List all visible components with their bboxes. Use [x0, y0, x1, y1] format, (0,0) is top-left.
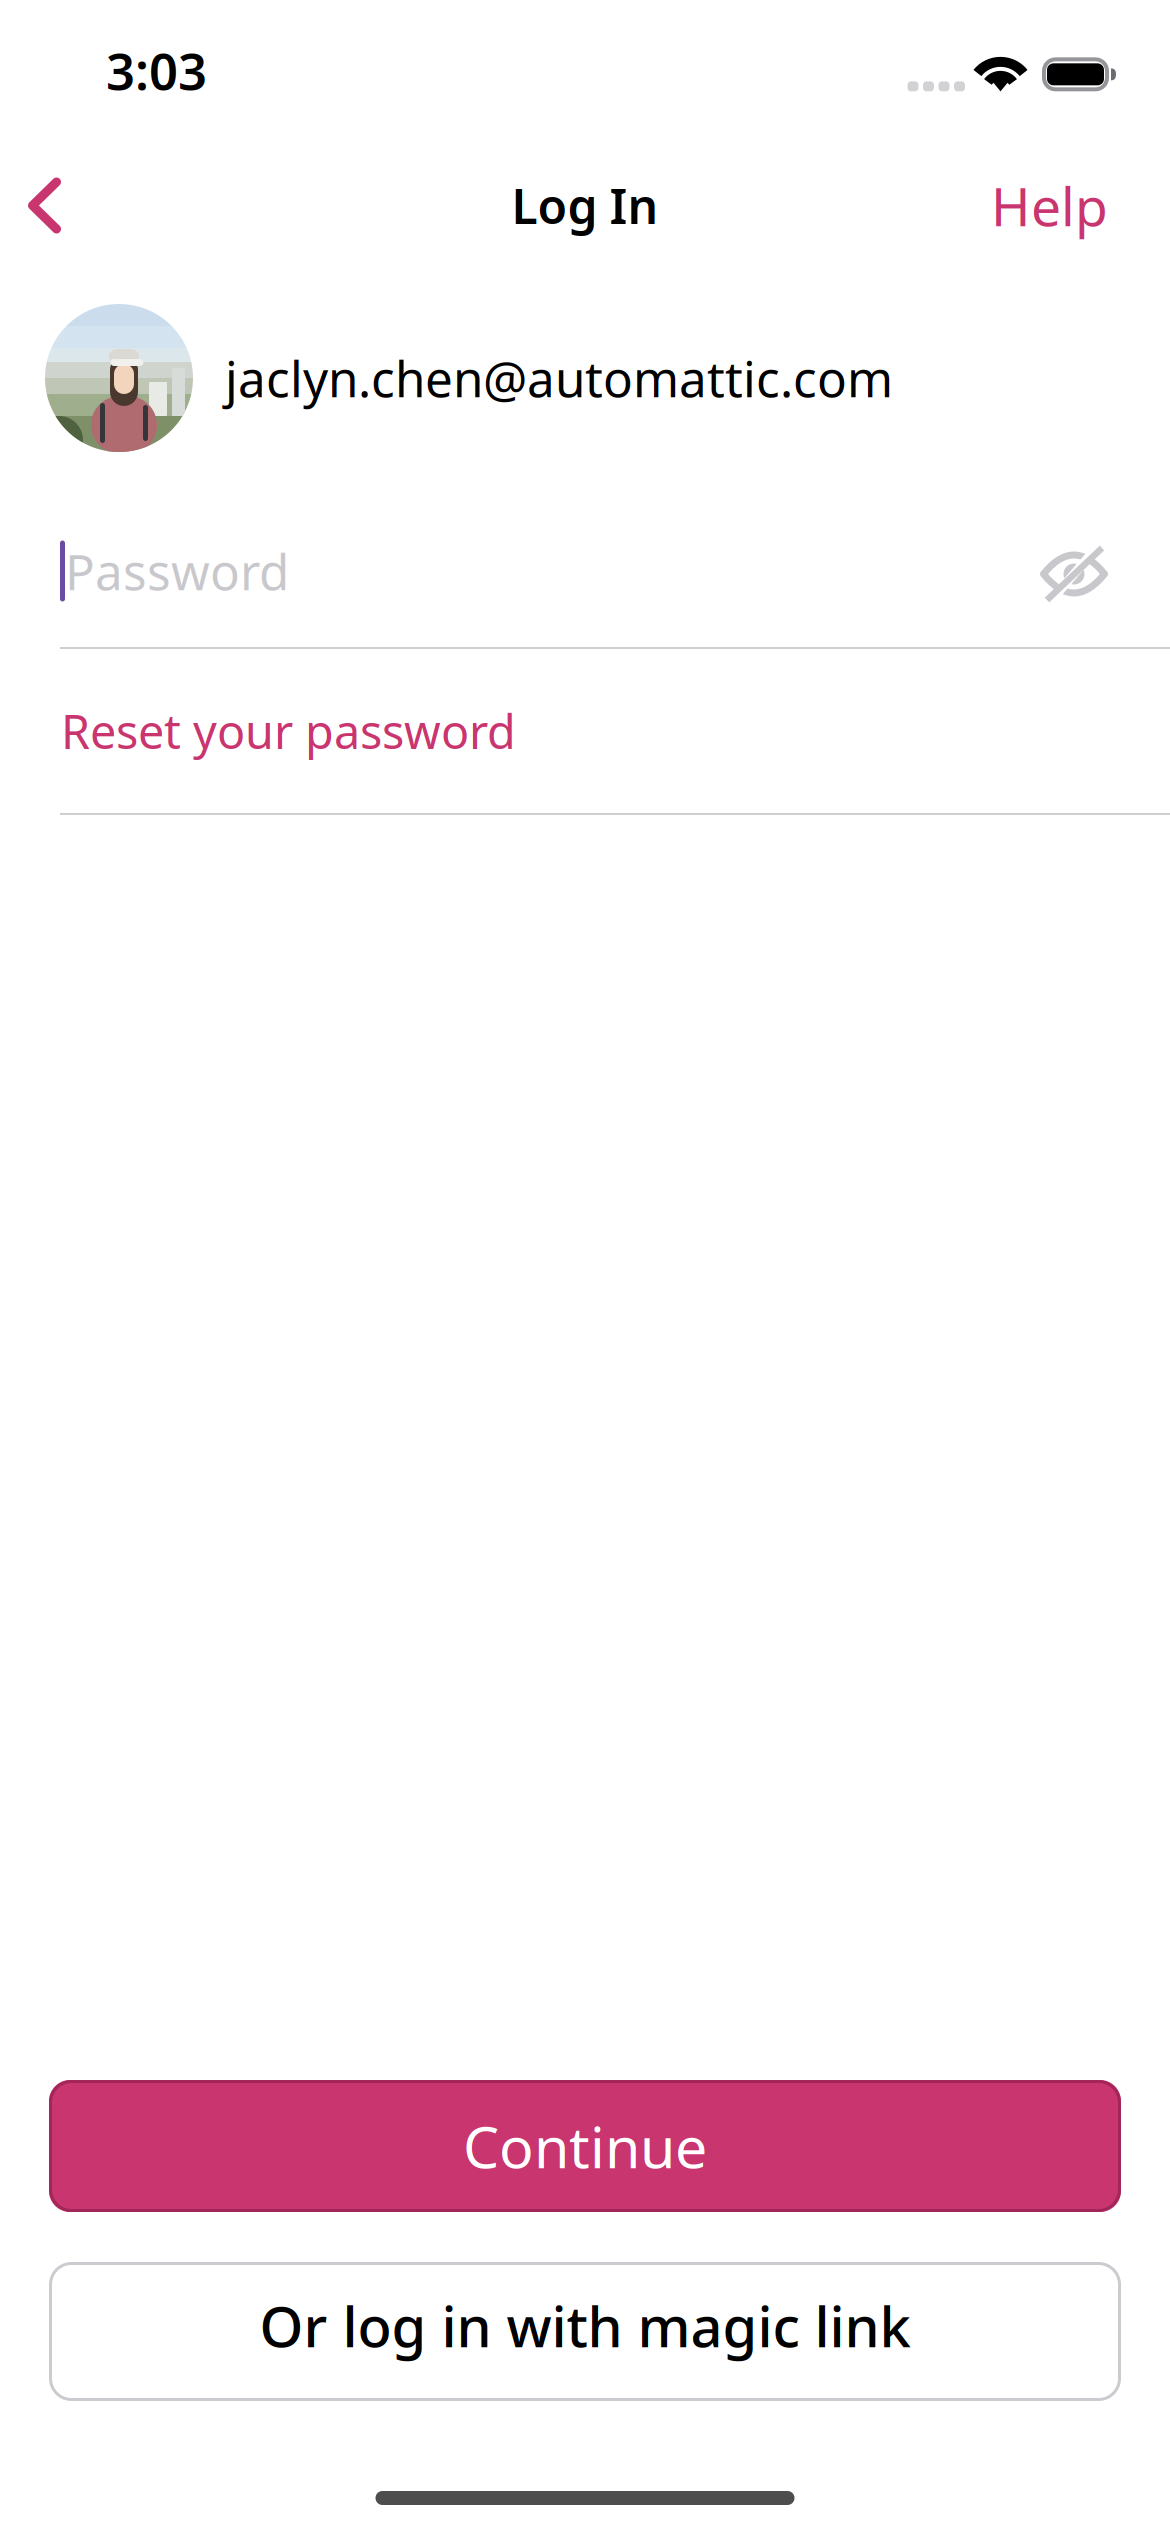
staticText: Continue [463, 2108, 707, 2184]
button[interactable]: Help [961, 139, 1138, 271]
button[interactable]: Show password [1008, 505, 1140, 637]
button[interactable]: Reset your password [0, 649, 1170, 813]
button[interactable]: Back [0, 139, 132, 271]
staticText: Help [991, 170, 1108, 241]
button[interactable]: Continue [0, 2080, 1170, 2212]
staticText: jaclyn.chen@automattic.com [225, 345, 893, 411]
staticText: Or log in with magic link [259, 2288, 910, 2363]
staticText: Password [65, 538, 289, 604]
staticText: Reset your password [61, 700, 516, 762]
staticText: 3:03 [106, 37, 207, 104]
button[interactable]: Or log in with magic link [0, 2262, 1170, 2401]
staticText: Log In [511, 174, 658, 237]
